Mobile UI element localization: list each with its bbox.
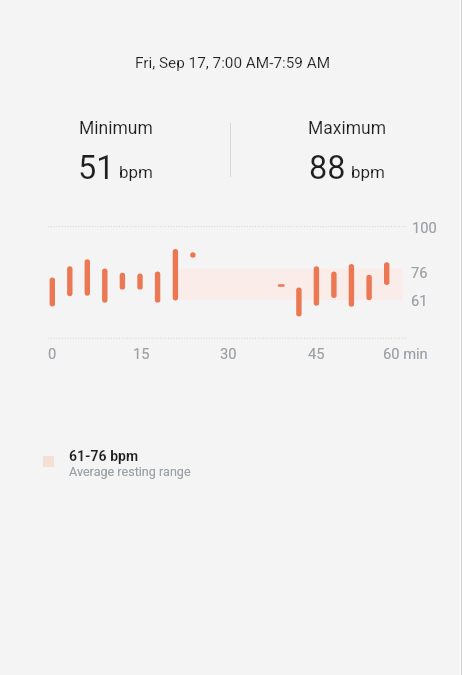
- staticText: Maximum: [308, 118, 387, 139]
- staticText: 15: [133, 345, 150, 362]
- staticText: 61-76 bpm: [69, 448, 139, 464]
- staticText: Fri, Sep 17, 7:00 AM-7:59 AM: [135, 54, 331, 72]
- staticText: bpm: [119, 162, 153, 182]
- button[interactable]: Heart rate chart, 7:00 AM to 7:59 AM: [30, 210, 440, 365]
- staticText: 88: [309, 149, 346, 187]
- staticText: 30: [220, 345, 237, 362]
- button[interactable]: [60, 110, 225, 188]
- staticText: Minimum: [79, 118, 153, 139]
- staticText: Average resting range: [69, 464, 191, 479]
- staticText: 0: [48, 345, 57, 362]
- staticText: 60 min: [383, 345, 428, 362]
- button[interactable]: [40, 444, 205, 484]
- staticText: 45: [308, 345, 325, 362]
- staticText: 76: [411, 264, 428, 281]
- staticText: 61: [411, 292, 428, 309]
- staticText: 100: [412, 219, 437, 236]
- button[interactable]: [290, 110, 455, 188]
- staticText: bpm: [351, 162, 385, 182]
- staticText: 51: [78, 149, 115, 187]
- button[interactable]: Fri, Sep 17, 7:00 AM-7:59 AM: [42, 46, 424, 80]
